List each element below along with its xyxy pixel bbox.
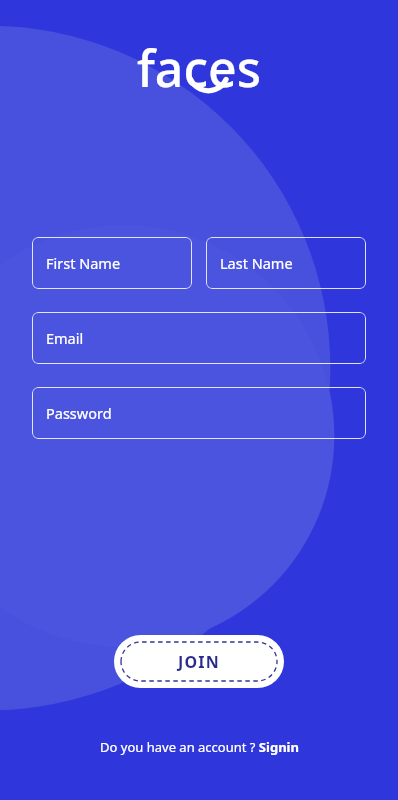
button[interactable]: JOIN (114, 635, 284, 688)
button[interactable]: Last Name (206, 237, 366, 289)
button[interactable]: Do you have an account ? Signin (92, 734, 307, 760)
staticText: First Name (46, 253, 121, 273)
button[interactable]: First Name (32, 237, 192, 289)
button[interactable]: Email (32, 312, 366, 364)
staticText: Do you have an account ? Signin (100, 738, 299, 756)
staticText: JOIN (178, 651, 220, 673)
staticText: Password (46, 403, 112, 423)
staticText: Last Name (220, 253, 293, 273)
button[interactable]: Password (32, 387, 366, 439)
staticText: faces (137, 34, 261, 96)
staticText: Email (46, 328, 84, 348)
